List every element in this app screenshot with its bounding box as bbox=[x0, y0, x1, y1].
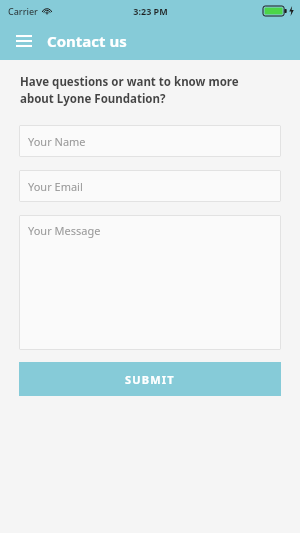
staticText: Your Message bbox=[28, 223, 101, 238]
staticText: Carrier bbox=[8, 5, 38, 17]
button[interactable]: Your Email bbox=[19, 170, 281, 202]
staticText: Your Name bbox=[28, 134, 86, 149]
staticText: SUBMIT bbox=[125, 372, 175, 387]
staticText: Have questions or want to know more abou… bbox=[20, 74, 239, 106]
button[interactable]: SUBMIT bbox=[19, 362, 281, 396]
button[interactable]: Your Message bbox=[19, 215, 281, 350]
button[interactable]: Your Name bbox=[19, 125, 281, 157]
staticText: Your Email bbox=[28, 179, 83, 194]
staticText: Contact us bbox=[47, 31, 127, 51]
button[interactable]: Open navigation menu bbox=[13, 30, 35, 52]
staticText: 3:23 PM bbox=[133, 5, 168, 17]
